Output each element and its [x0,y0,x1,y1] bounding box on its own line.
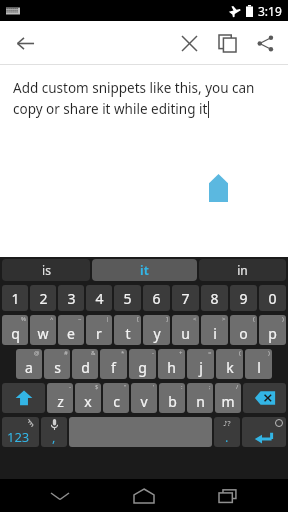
staticText: x [84,392,92,411]
staticText: 1 [11,289,20,308]
button[interactable]: Backspace [243,383,286,413]
staticText: d [81,358,90,377]
button[interactable]: : [159,383,185,413]
button[interactable]: * [100,349,127,379]
button[interactable]: ( [216,349,243,379]
button[interactable]: ; [187,383,213,413]
staticText: 5 [123,289,132,308]
staticText: Add custom snippets like this, you can [13,79,255,97]
staticText: . [225,428,229,446]
staticText: t [125,324,131,343]
button[interactable]: > [201,315,228,345]
button[interactable]: $ [75,383,101,413]
button[interactable]: = [187,349,214,379]
button[interactable]: # [44,349,70,379]
staticText: + [179,349,183,357]
button[interactable]: Recents [204,479,252,512]
button[interactable]: Back [36,479,84,512]
staticText: f [111,358,116,377]
button[interactable]: ) [259,315,286,345]
button[interactable]: ~ [58,315,84,345]
staticText: k [226,358,234,377]
staticText: " [124,383,127,391]
staticText: ; [209,383,211,391]
button[interactable]: Home [120,479,168,512]
button[interactable]: 3 [58,285,84,311]
staticText: : [181,383,183,391]
staticText: ^ [50,315,54,323]
staticText: r [96,324,102,343]
button[interactable]: ' [131,383,157,413]
staticText: > [222,315,226,323]
button[interactable]: ( [230,315,257,345]
staticText: & [91,349,96,357]
button[interactable]: 5 [114,285,141,311]
staticText: = [208,349,212,357]
staticText: < [193,315,197,323]
staticText: 4 [95,289,104,308]
button[interactable]: Share [246,24,284,62]
staticText: z [57,392,64,411]
button[interactable]: ] [143,315,170,345]
button[interactable]: & [72,349,98,379]
button[interactable]: / [215,383,241,413]
staticText: 3 [67,289,76,308]
staticText: 2 [39,289,48,308]
button[interactable]: 6 [143,285,170,311]
staticText: q [11,324,20,343]
button[interactable]: | [86,315,112,345]
button[interactable]: 0 [259,285,286,311]
staticText: s [54,358,61,377]
staticText: a [25,358,33,377]
button[interactable]: @ [16,349,42,379]
button[interactable]: 7 [172,285,199,311]
staticText: $ [95,383,99,391]
button[interactable]: Symbols 123 [2,417,39,447]
staticText: o [239,324,248,343]
staticText: ~ [78,315,82,323]
button[interactable]: 8 [201,285,228,311]
staticText: 0 [268,289,277,308]
button[interactable]: it [92,259,197,281]
button[interactable]: [ [114,315,141,345]
staticText: is [42,262,51,278]
staticText: it [140,262,149,278]
staticText: u [181,324,190,343]
button[interactable]: 2 [30,285,56,311]
button[interactable]: - [129,349,156,379]
staticText: l [257,358,261,377]
staticText: 7 [181,289,190,308]
button[interactable]: + [158,349,185,379]
button[interactable]: Close [170,24,208,62]
staticText: in [237,262,248,278]
staticText: 3:19 [258,3,282,19]
staticText: | [106,315,110,323]
staticText: b [168,392,177,411]
staticText: 8 [210,289,219,308]
button[interactable]: Period [214,417,240,447]
staticText: p [268,324,277,343]
button[interactable]: Shift [2,383,45,413]
button[interactable]: Copy [208,24,246,62]
button[interactable]: ) [245,349,272,379]
staticText: h [167,358,176,377]
staticText: % [21,315,26,323]
button[interactable]: is [2,259,90,281]
button[interactable]: in [199,259,286,281]
button[interactable]: " [103,383,129,413]
button[interactable]: - [47,383,73,413]
button[interactable]: 9 [230,285,257,311]
staticText: ) [282,315,284,323]
button[interactable]: Back [6,24,44,62]
button[interactable]: Voice input [41,417,67,447]
staticText: ♪? [223,419,231,429]
button[interactable]: < [172,315,199,345]
button[interactable]: % [2,315,28,345]
button[interactable]: Enter [242,417,286,447]
staticText: w [37,324,49,343]
button[interactable]: ^ [30,315,56,345]
button[interactable]: 1 [2,285,28,311]
button[interactable]: 4 [86,285,112,311]
staticText: / [236,383,239,391]
